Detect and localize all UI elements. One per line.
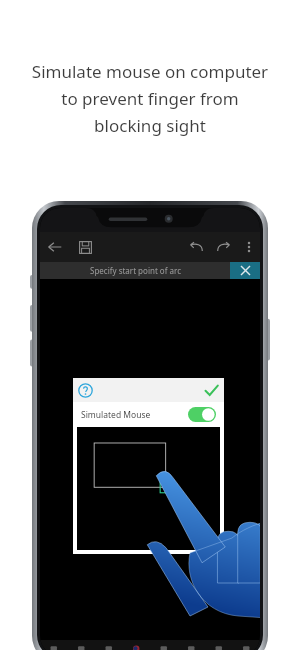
button[interactable]: Save — [70, 232, 100, 262]
staticText: Simulate mouse on computer to prevent fi… — [12, 60, 288, 137]
button[interactable]: Simulated Mouse — [73, 402, 224, 427]
button[interactable]: Confirm — [198, 378, 224, 402]
staticText: Specify start point of arc — [90, 265, 181, 276]
button[interactable]: Back — [40, 232, 70, 262]
button[interactable]: Close — [230, 262, 260, 279]
button[interactable]: Undo — [182, 232, 210, 262]
staticText: Simulated Mouse — [81, 409, 151, 421]
button[interactable]: More options — [238, 232, 260, 262]
button[interactable]: Redo — [210, 232, 238, 262]
button[interactable]: Help — [73, 378, 97, 402]
button[interactable]: Specify start point of arc — [40, 262, 230, 279]
